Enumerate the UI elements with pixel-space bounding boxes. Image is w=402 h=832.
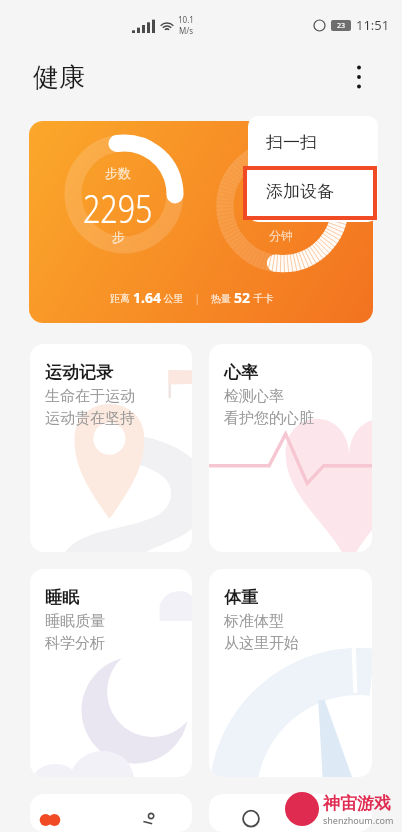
staticText: 千卡 [251,291,274,305]
staticText: 公里 [161,291,184,305]
button[interactable]: 心率 [209,344,372,552]
staticText: 10.1 [178,14,194,25]
staticText: | [184,291,211,305]
staticText: 看护您的心脏 [224,409,314,428]
button[interactable]: 体重 [209,569,372,777]
staticText: 52 [234,288,251,307]
staticText: 23 [337,21,346,31]
staticText: shenzhoum.com [323,814,394,826]
button[interactable]: 扫一扫 [248,116,378,169]
button[interactable]: 运动记录 [30,344,192,552]
staticText: 1.64 [133,288,161,307]
staticText: 运动记录 [45,362,113,383]
staticText: 添加设备 [266,181,334,202]
staticText: 热量 [211,291,234,305]
button[interactable]: 睡眠 [30,569,192,777]
button[interactable] [209,794,372,832]
button[interactable]: More options [344,62,374,92]
staticText: 检测心率 [224,387,284,406]
button[interactable]: 健康 [0,800,100,832]
staticText: 标准体型 [224,612,284,631]
staticText: 健康 [33,61,85,94]
staticText: 步数 [105,165,131,181]
button[interactable] [30,794,192,832]
staticText: 扫一扫 [266,132,317,153]
staticText: 神宙游戏 [323,793,391,814]
staticText: 生命在于运动 [45,387,135,406]
staticText: 距离 [110,291,133,305]
staticText: 睡眠 [45,587,79,608]
staticText: M/s [179,25,194,36]
staticText: 2295 [83,181,153,229]
staticText: 体重 [224,587,258,608]
staticText: 步 [112,229,125,245]
staticText: 心率 [224,362,258,383]
button[interactable]: 添加设备 [248,169,378,222]
staticText: 科学分析 [45,634,105,653]
button[interactable]: 步数 [29,121,373,323]
button[interactable]: 发现 [200,800,301,832]
staticText: 从这里开始 [224,634,299,653]
staticText: 运动贵在坚持 [45,409,135,428]
staticText: 睡眠质量 [45,612,105,631]
staticText: 分钟 [269,228,293,243]
staticText: 11:51 [356,16,390,34]
button[interactable]: 运动 [100,800,200,832]
staticText: 添加设备 [266,185,334,206]
